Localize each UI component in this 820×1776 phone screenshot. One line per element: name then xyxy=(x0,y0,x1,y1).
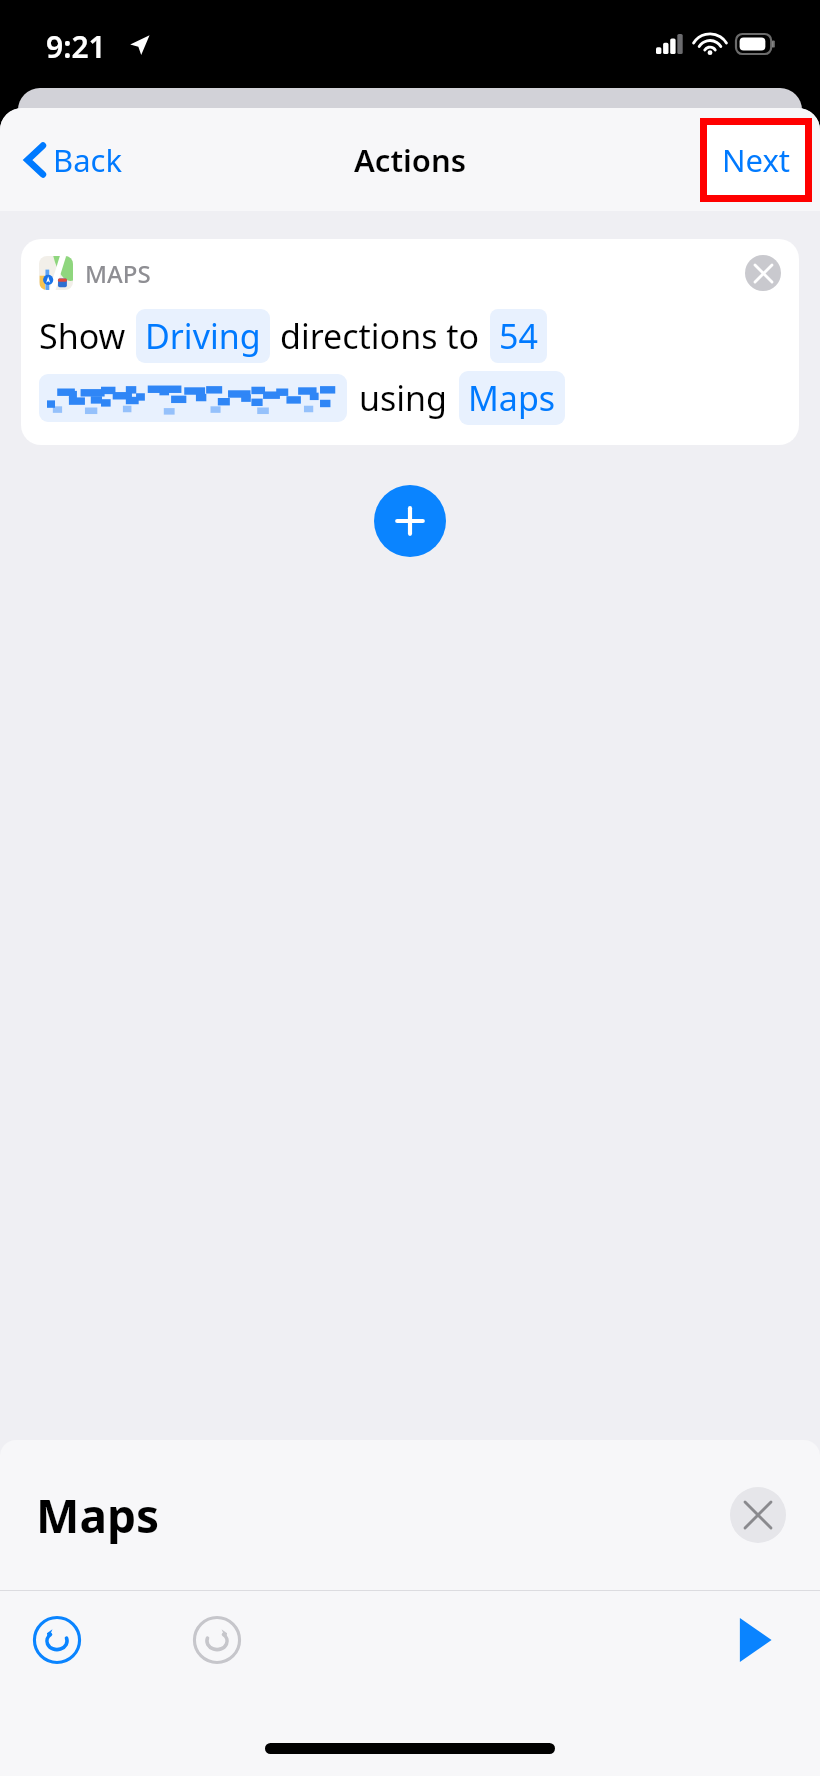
staticText: Actions xyxy=(354,139,466,181)
staticText: Show xyxy=(39,313,126,359)
button[interactable]: Driving xyxy=(136,309,270,363)
button[interactable]: Back xyxy=(18,131,128,189)
button[interactable]: Next xyxy=(707,125,805,195)
staticText: directions to xyxy=(280,313,480,359)
button[interactable]: Close xyxy=(730,1487,786,1543)
staticText: Driving xyxy=(145,313,261,359)
staticText: Maps xyxy=(468,375,556,421)
button[interactable]: 54 xyxy=(490,309,547,363)
button[interactable]: Remove action xyxy=(745,255,781,291)
button[interactable]: Undo xyxy=(22,1605,92,1675)
staticText: 54 xyxy=(499,313,538,359)
button[interactable]: Maps xyxy=(459,371,565,425)
button[interactable]: Add action xyxy=(374,485,446,557)
staticText: 9:21 xyxy=(46,26,106,67)
staticText: using xyxy=(359,375,447,421)
staticText: MAPS xyxy=(85,257,151,290)
button[interactable]: Run shortcut xyxy=(720,1605,790,1675)
button[interactable]: Address xyxy=(39,374,347,422)
button[interactable]: Redo xyxy=(182,1605,252,1675)
staticText: Back xyxy=(53,139,122,181)
staticText: Maps xyxy=(36,1484,160,1547)
staticText: Next xyxy=(722,139,791,181)
button[interactable]: MAPS xyxy=(21,239,799,445)
